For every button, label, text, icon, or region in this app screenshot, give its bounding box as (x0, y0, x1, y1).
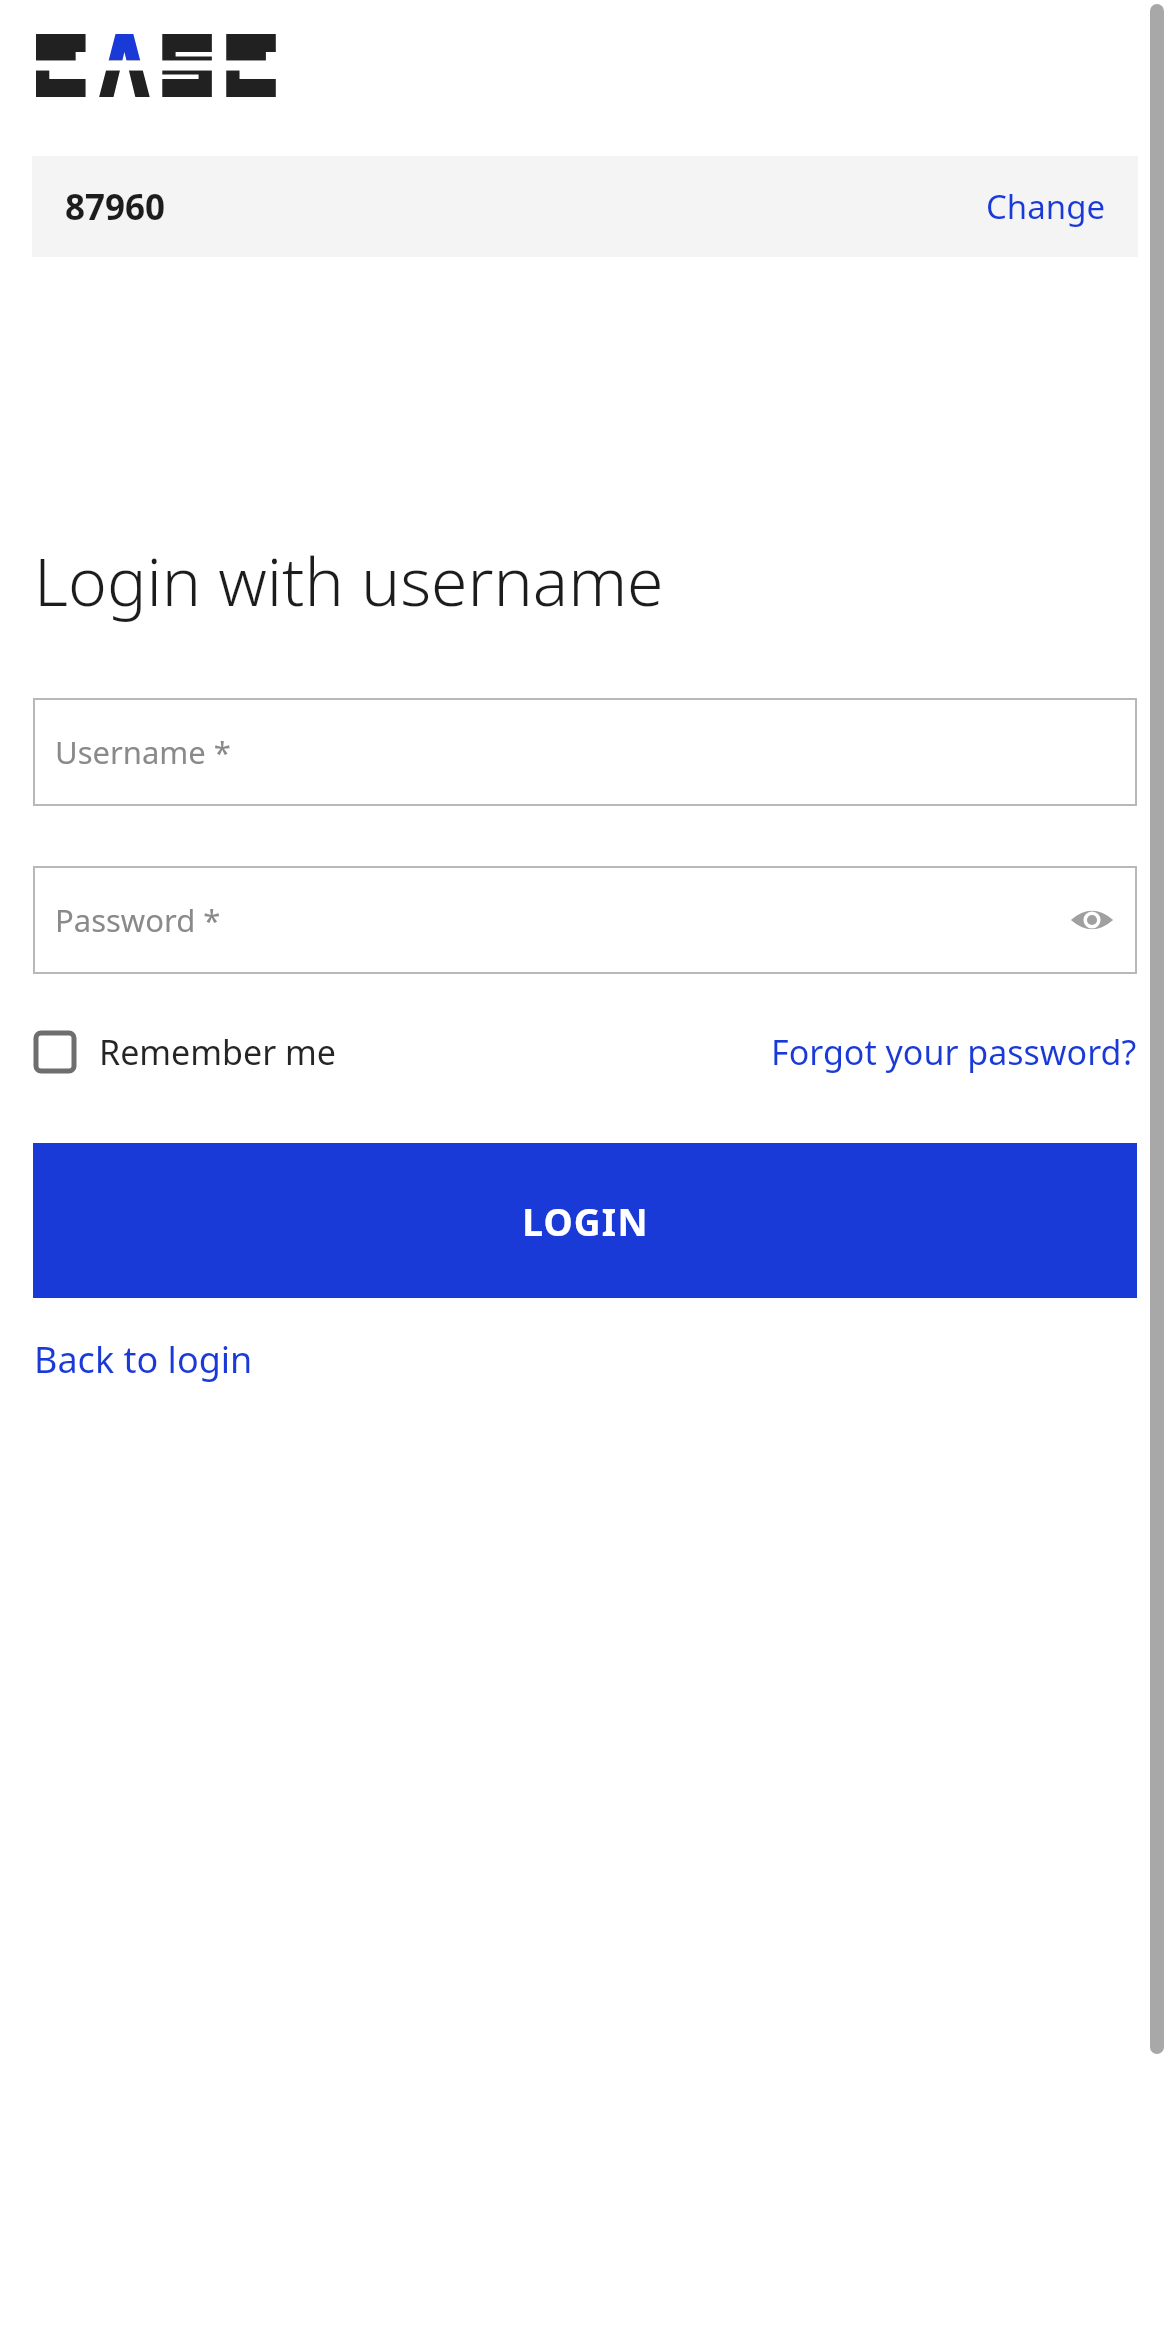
staticText: Username * (55, 731, 231, 773)
staticText: 87960 (65, 183, 166, 231)
staticText: Login with username (34, 535, 664, 625)
staticText: Back to login (34, 1335, 253, 1384)
button[interactable]: Remember me (33, 1029, 337, 1075)
staticText: Forgot your password? (771, 1029, 1137, 1075)
button[interactable]: 87960 (32, 156, 1138, 257)
button[interactable]: Back to login (34, 1335, 253, 1384)
button[interactable]: Password * (33, 866, 1137, 974)
button[interactable]: Show password (1069, 897, 1115, 943)
staticText: Password * (55, 899, 221, 941)
button[interactable]: Forgot your password? (771, 1029, 1137, 1075)
staticText: LOGIN (522, 1196, 649, 1246)
button[interactable]: Username * (33, 698, 1137, 806)
staticText: Remember me (99, 1029, 337, 1075)
button[interactable]: LOGIN (33, 1143, 1137, 1298)
staticText: Change (986, 184, 1106, 229)
button[interactable]: Change (986, 184, 1106, 229)
